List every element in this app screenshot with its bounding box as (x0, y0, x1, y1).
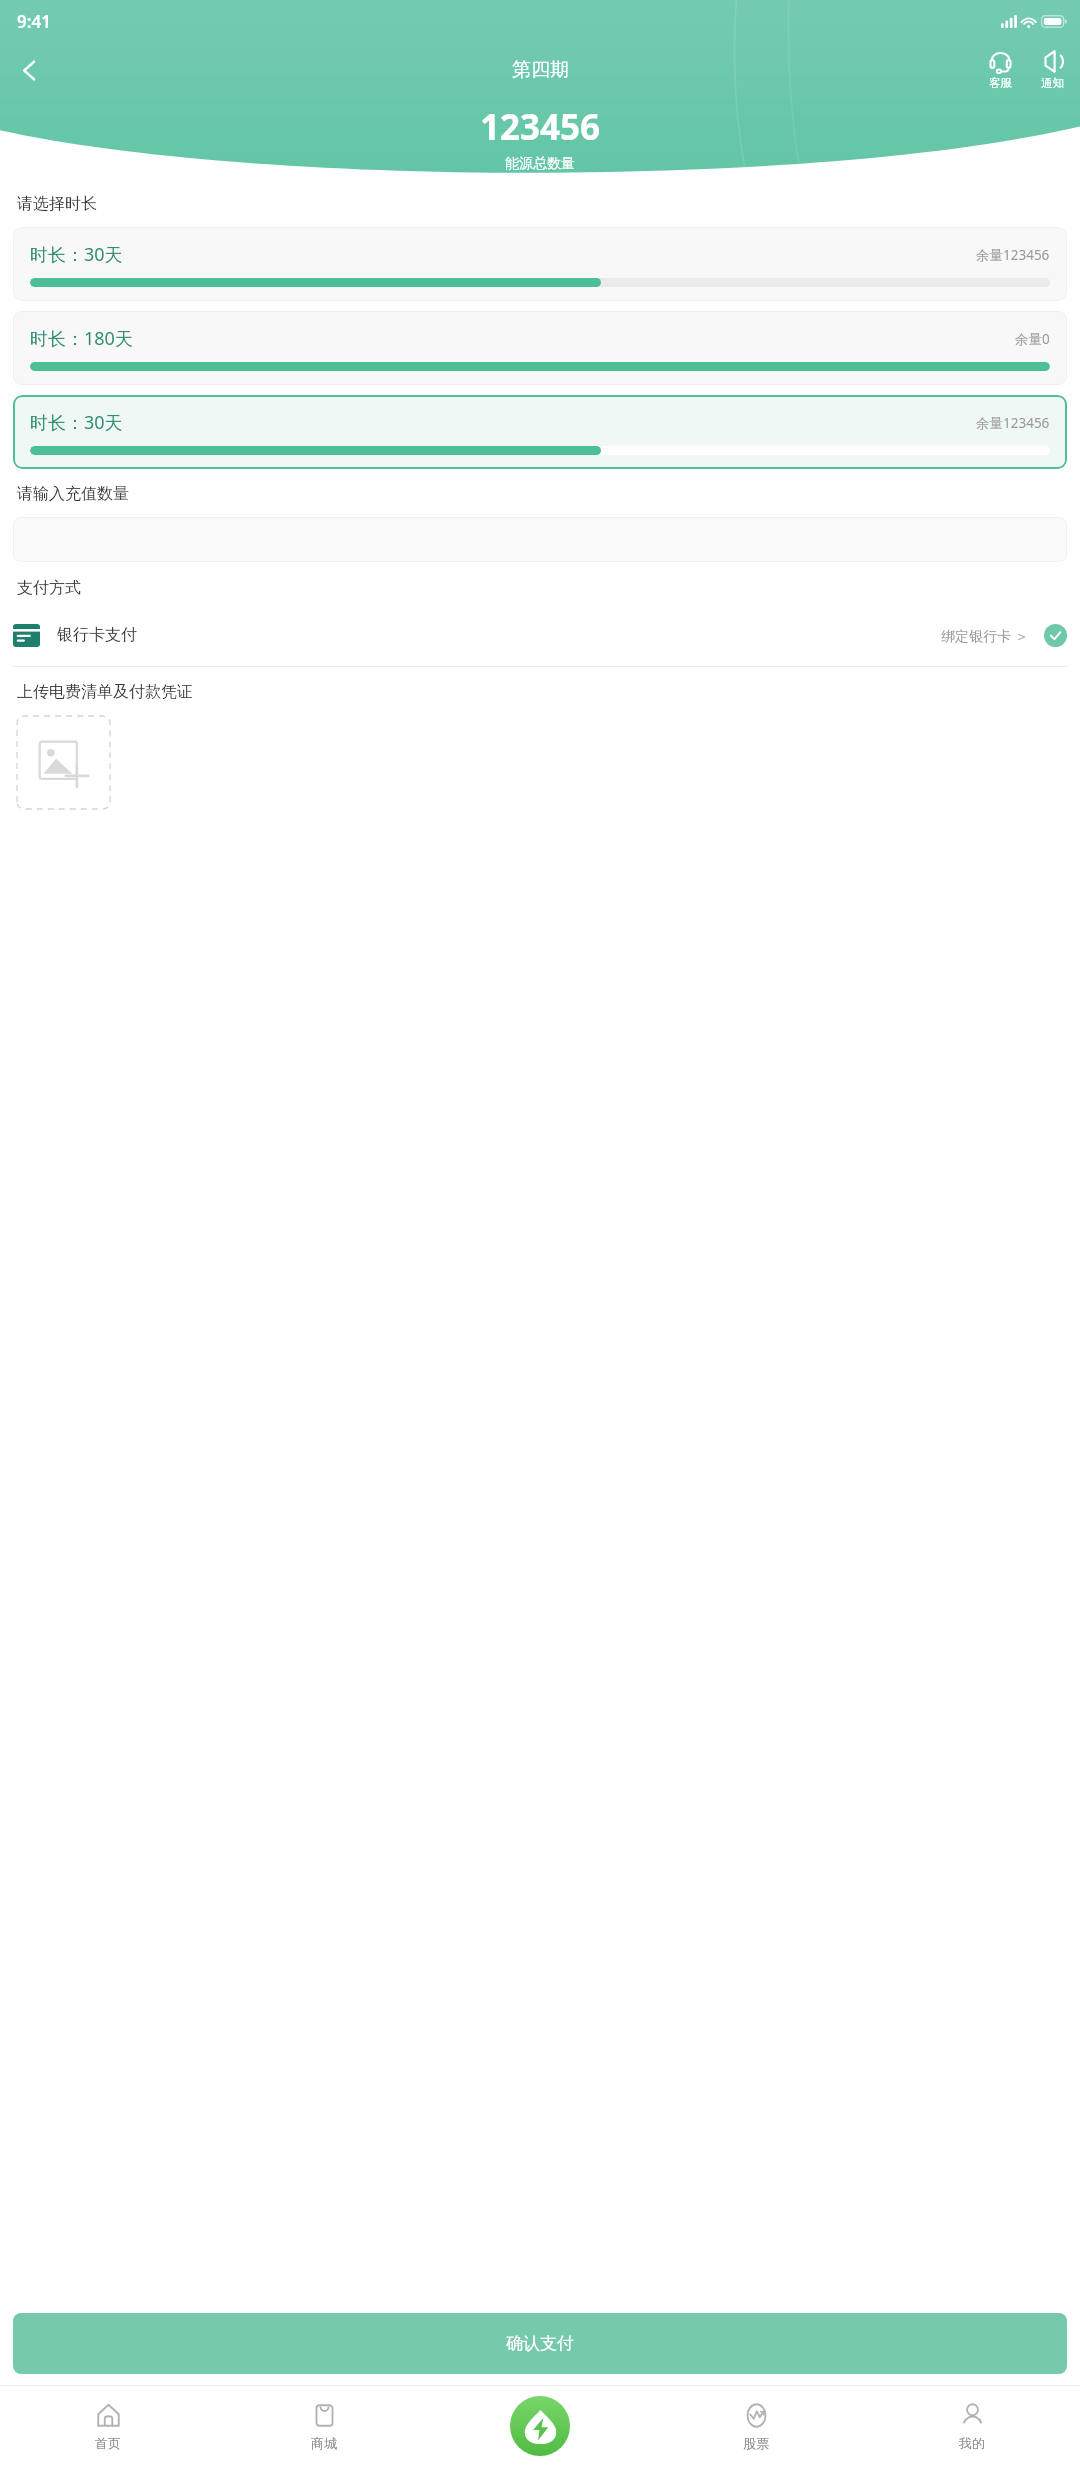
staticText: 商城 (311, 2435, 337, 2451)
staticText: 通知 (1041, 76, 1064, 90)
button[interactable]: 通知 (1038, 49, 1067, 90)
staticText: 余量123456 (976, 414, 1050, 432)
staticText: 支付方式 (17, 578, 81, 598)
staticText: 能源总数量 (0, 155, 1080, 173)
staticText: 123456 (0, 103, 1080, 151)
button[interactable]: 我的 (864, 2385, 1080, 2481)
staticText: 请输入充值数量 (17, 484, 129, 504)
button[interactable]: 股票 (648, 2385, 864, 2481)
button[interactable]: 时长：30天 (13, 395, 1067, 469)
button[interactable]: 确认支付 (13, 2313, 1067, 2374)
button[interactable]: 银行卡支付 (13, 611, 1067, 659)
button[interactable]: 客服 (986, 49, 1015, 90)
staticText: 确认支付 (506, 2333, 574, 2354)
staticText: 请选择时长 (17, 194, 97, 214)
staticText: 余量123456 (976, 246, 1050, 264)
staticText: 绑定银行卡 ＞ (941, 626, 1029, 645)
button[interactable]: 已选择银行卡支付 (1044, 624, 1067, 647)
staticText: 我的 (959, 2435, 985, 2451)
button[interactable]: 商城 (216, 2385, 432, 2481)
staticText: 时长：180天 (30, 326, 133, 351)
button[interactable]: 首页 (0, 2385, 216, 2481)
button[interactable]: 上传图片 (17, 716, 110, 809)
button[interactable]: 时长：180天 (13, 311, 1067, 385)
staticText: 上传电费清单及付款凭证 (17, 682, 193, 702)
staticText: 股票 (743, 2435, 769, 2451)
staticText: 时长：30天 (30, 242, 123, 267)
staticText: 9:41 (17, 10, 51, 33)
staticText: 客服 (989, 76, 1012, 90)
staticText: 第四期 (512, 58, 569, 82)
button[interactable]: 充电 (510, 2396, 570, 2456)
button[interactable]: 时长：30天 (13, 227, 1067, 301)
staticText: 银行卡支付 (57, 625, 137, 645)
button[interactable]: 返回 (4, 45, 54, 95)
staticText: 时长：30天 (30, 410, 123, 435)
staticText: 余量0 (1015, 330, 1050, 348)
staticText: 首页 (95, 2435, 121, 2451)
